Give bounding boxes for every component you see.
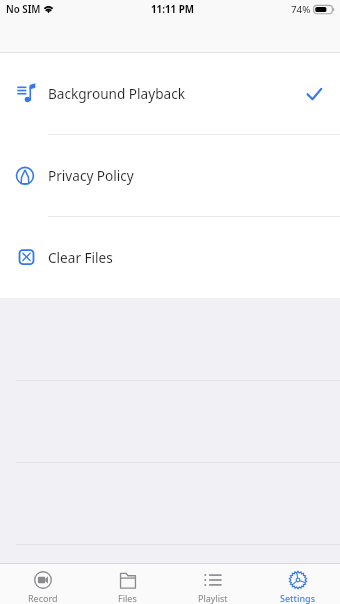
staticText: Playlist	[198, 592, 228, 604]
staticText: No SIM	[6, 3, 41, 16]
staticText: Background Playback	[48, 84, 185, 103]
button[interactable]: Files	[85, 564, 170, 604]
button[interactable]: Playlist	[170, 564, 255, 604]
staticText: Settings	[280, 592, 316, 604]
button[interactable]: Settings	[255, 564, 340, 604]
button[interactable]: Background Playback	[0, 53, 340, 134]
staticText: Privacy Policy	[48, 166, 134, 185]
staticText: Clear Files	[48, 248, 113, 267]
staticText: 74%	[291, 3, 311, 16]
staticText: 11:11 PM	[151, 3, 195, 16]
staticText: Record	[28, 592, 58, 604]
button[interactable]: Record	[0, 564, 85, 604]
staticText: Files	[118, 592, 137, 604]
button[interactable]: Privacy Policy	[0, 135, 340, 216]
button[interactable]: Clear Files	[0, 217, 340, 298]
